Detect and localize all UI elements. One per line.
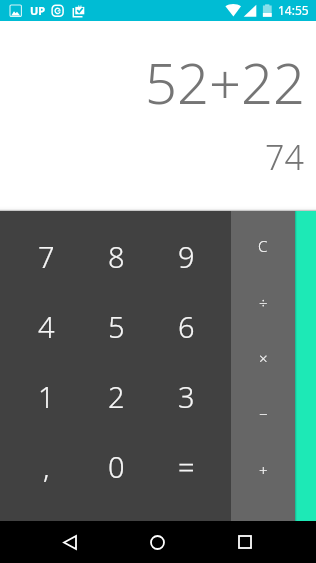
button[interactable]: 7 (11, 221, 81, 291)
staticText: 74 (265, 134, 304, 180)
button[interactable]: Home (135, 521, 179, 563)
button[interactable]: Divide (231, 274, 295, 330)
staticText: ÷ (259, 292, 268, 312)
staticText: = (178, 447, 195, 486)
staticText: , (43, 447, 50, 486)
staticText: 6 (178, 307, 195, 346)
button[interactable]: = (151, 431, 221, 501)
staticText: 9 (178, 237, 195, 276)
button[interactable]: Clear (231, 218, 295, 274)
button[interactable]: 5 (81, 291, 151, 361)
staticText: + (259, 460, 268, 480)
staticText: 5 (108, 307, 125, 346)
staticText: 7 (38, 237, 55, 276)
button[interactable]: 3 (151, 361, 221, 431)
staticText: 0 (108, 447, 125, 486)
button[interactable]: , (11, 431, 81, 501)
button[interactable]: 1 (11, 361, 81, 431)
button[interactable]: Subtract (231, 386, 295, 442)
button[interactable]: 6 (151, 291, 221, 361)
staticText: 2 (108, 377, 125, 416)
button[interactable]: Recent apps (223, 521, 267, 563)
button[interactable]: 2 (81, 361, 151, 431)
button[interactable]: Multiply (231, 330, 295, 386)
staticText: 14:55 (278, 2, 309, 18)
staticText: C (258, 236, 268, 256)
staticText: 1 (38, 377, 55, 416)
staticText: 8 (108, 237, 125, 276)
button[interactable]: Back (48, 521, 92, 563)
staticText: 52+22 (145, 44, 305, 120)
button[interactable]: 4 (11, 291, 81, 361)
staticText: − (259, 404, 268, 424)
button[interactable]: Add (231, 442, 295, 498)
staticText: UP (30, 3, 46, 18)
button[interactable]: 8 (81, 221, 151, 291)
staticText: 4 (38, 307, 55, 346)
button[interactable]: 0 (81, 431, 151, 501)
button[interactable]: 9 (151, 221, 221, 291)
staticText: × (259, 348, 268, 368)
staticText: 3 (178, 377, 195, 416)
